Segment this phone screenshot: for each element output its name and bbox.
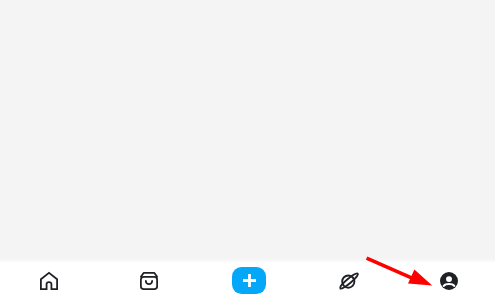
button[interactable]: Profile: [418, 262, 480, 300]
button[interactable]: Shop: [118, 262, 180, 300]
button[interactable]: Home: [18, 262, 80, 300]
button[interactable]: Add: [232, 267, 266, 294]
button[interactable]: Explore: [318, 262, 380, 300]
